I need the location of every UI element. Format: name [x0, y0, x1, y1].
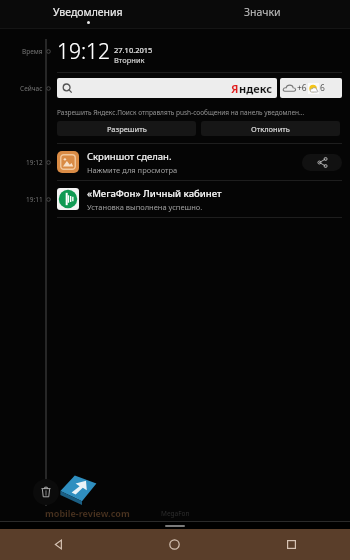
staticText: +6	[297, 82, 307, 94]
staticText: MegaFon	[161, 509, 190, 518]
button[interactable]: Скриншот сделан.	[57, 144, 342, 180]
staticText: Время	[22, 47, 43, 56]
button[interactable]: +6	[280, 78, 342, 98]
button[interactable]: Разрешить	[57, 121, 196, 136]
staticText: 19:11	[26, 195, 43, 204]
staticText: mobile-review.com	[45, 507, 130, 519]
staticText: Отклонить	[251, 124, 290, 134]
button[interactable]: Уведомления	[0, 0, 175, 28]
button[interactable]: Share	[302, 154, 342, 171]
staticText: 27.10.2015	[114, 45, 153, 55]
staticText: ндекс	[239, 81, 272, 96]
button[interactable]: Clear all notifications	[33, 479, 59, 505]
button[interactable]: Back	[0, 529, 116, 560]
staticText: Установка выполнена успешно.	[87, 202, 203, 212]
staticText: Вторник	[114, 55, 145, 65]
button[interactable]: Отклонить	[201, 121, 340, 136]
staticText: Разрешить Яндекс.Поиск отправлять push-с…	[57, 108, 305, 117]
button[interactable]: Значки	[175, 0, 350, 28]
staticText: Значки	[244, 5, 281, 19]
staticText: 6	[320, 82, 325, 94]
button[interactable]: Home	[116, 529, 233, 560]
staticText: Уведомления	[53, 5, 123, 19]
staticText: «МегаФон» Личный кабинет	[87, 187, 222, 200]
staticText: 19:12	[26, 158, 43, 167]
button[interactable]: «МегаФон» Личный кабинет	[57, 181, 342, 217]
button[interactable]: Я	[57, 78, 277, 98]
staticText: Я	[231, 81, 239, 96]
staticText: Сейчас	[20, 84, 43, 93]
staticText: Скриншот сделан.	[87, 150, 172, 163]
button[interactable]: Recent apps	[233, 529, 350, 560]
staticText: Нажмите для просмотра	[87, 165, 178, 175]
staticText: Разрешить	[107, 124, 147, 134]
staticText: 19:12	[57, 37, 111, 66]
